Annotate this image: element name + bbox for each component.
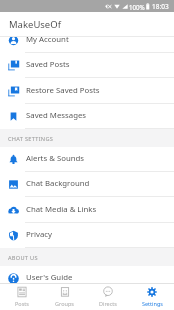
button[interactable]: Alerts & Sounds — [0, 147, 174, 172]
button[interactable]: Chat Background — [0, 172, 174, 197]
staticText: Chat Media & Links — [26, 204, 97, 215]
button[interactable]: User's Guide — [0, 266, 174, 284]
staticText: 100% — [129, 3, 145, 11]
staticText: 18:03 — [152, 2, 169, 11]
staticText: User's Guide — [26, 272, 73, 283]
staticText: Saved Posts — [26, 59, 70, 70]
staticText: CHAT SETTINGS — [8, 135, 54, 143]
button[interactable]: Groups — [43, 284, 86, 310]
staticText: Posts — [15, 300, 29, 307]
button[interactable]: Directs — [86, 284, 130, 310]
button[interactable]: Privacy — [0, 223, 174, 248]
staticText: Groups — [55, 300, 74, 307]
button[interactable]: Chat Media & Links — [0, 197, 174, 223]
button[interactable]: Saved Posts — [0, 53, 174, 78]
staticText: Saved Messages — [26, 110, 87, 121]
staticText: My Account — [26, 37, 69, 45]
button[interactable]: Restore Saved Posts — [0, 78, 174, 104]
button[interactable]: Saved Messages — [0, 104, 174, 129]
staticText: Alerts & Sounds — [26, 153, 85, 164]
staticText: Directs — [99, 300, 117, 307]
button[interactable]: My Account — [0, 37, 174, 53]
staticText: ABOUT US — [8, 254, 38, 262]
button[interactable]: Settings — [130, 284, 174, 310]
staticText: Chat Background — [26, 178, 90, 189]
button[interactable]: Posts — [0, 284, 43, 310]
staticText: Privacy — [26, 229, 53, 240]
staticText: Settings — [142, 300, 163, 307]
staticText: Restore Saved Posts — [26, 85, 100, 96]
staticText: MakeUseOf — [9, 18, 61, 31]
